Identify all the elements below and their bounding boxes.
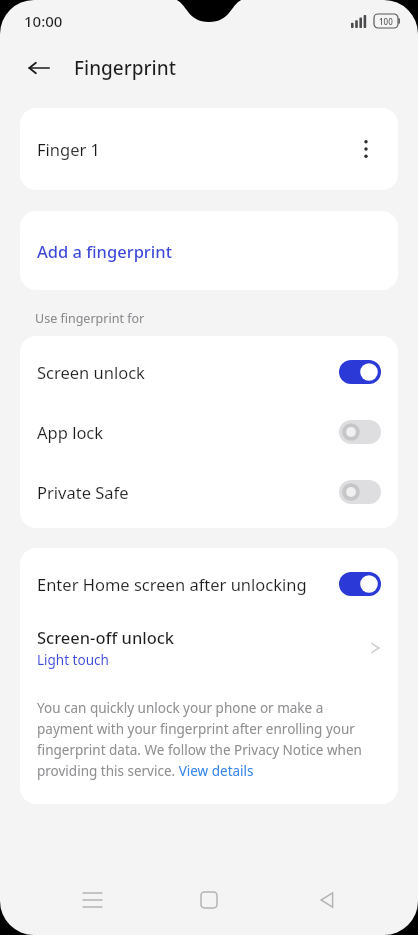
staticText: Screen unlock — [37, 361, 339, 383]
staticText: Finger 1 — [37, 138, 351, 160]
staticText: Add a fingerprint — [37, 240, 172, 262]
staticText: Screen-off unlock — [37, 626, 175, 648]
button[interactable]: Private Safe — [20, 462, 398, 522]
staticText: 100 — [379, 16, 393, 27]
button[interactable]: More options — [351, 134, 381, 164]
button[interactable]: Enter Home screen after unlocking — [20, 548, 398, 616]
button[interactable]: Back — [301, 874, 353, 926]
staticText: You can quickly unlock your phone or mak… — [37, 699, 381, 780]
button[interactable]: Back — [24, 53, 54, 83]
staticText: Light touch — [37, 651, 109, 669]
button[interactable]: Screen-off unlock — [20, 616, 398, 685]
staticText: 10:00 — [24, 11, 63, 31]
staticText: Private Safe — [37, 481, 339, 503]
staticText: Enter Home screen after unlocking — [37, 573, 307, 595]
button[interactable]: Home — [183, 874, 235, 926]
button[interactable]: Finger 1 — [20, 108, 398, 190]
button[interactable]: App lock — [20, 402, 398, 462]
staticText: Use fingerprint for — [35, 310, 145, 327]
button[interactable]: Recent apps — [66, 874, 118, 926]
staticText: App lock — [37, 421, 339, 443]
button[interactable]: Add a fingerprint — [20, 211, 398, 290]
button[interactable]: Screen unlock — [20, 342, 398, 402]
staticText: Fingerprint — [74, 55, 176, 81]
